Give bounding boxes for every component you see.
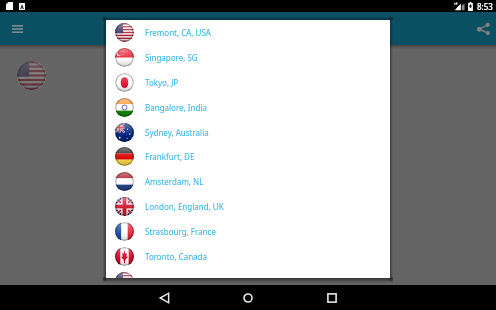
button[interactable]: Fremont, CA, USA: [106, 23, 390, 42]
button[interactable]: Tokyo, JP: [106, 73, 390, 92]
staticText: Fremont, CA, USA: [145, 27, 211, 38]
button[interactable]: Home: [235, 285, 260, 310]
button[interactable]: Strasbourg, France: [106, 222, 390, 241]
staticText: Sydney, Australia: [145, 127, 209, 138]
staticText: Tokyo, JP: [145, 77, 179, 88]
button[interactable]: Open navigation menu: [6, 18, 28, 40]
button[interactable]: Sydney, Australia: [106, 123, 390, 142]
button[interactable]: Amsterdam, NL: [106, 172, 390, 191]
staticText: Toronto, Canada: [145, 251, 207, 262]
staticText: London, England, UK: [145, 201, 224, 212]
button[interactable]: Recent apps: [319, 285, 344, 310]
button[interactable]: Toronto, Canada: [106, 247, 390, 266]
staticText: Frankfurt, DE: [145, 151, 195, 162]
staticText: Strasbourg, France: [145, 226, 216, 237]
staticText: 8:53: [477, 1, 493, 12]
button[interactable]: Share: [471, 17, 495, 41]
staticText: Singapore, SG: [145, 52, 198, 63]
staticText: Bangalore, India: [145, 102, 207, 113]
button[interactable]: Singapore, SG: [106, 48, 390, 67]
button[interactable]: London, England, UK: [106, 197, 390, 216]
button[interactable]: Fremont, CA, USA: [106, 272, 390, 278]
button[interactable]: Bangalore, India: [106, 98, 390, 117]
button[interactable]: Frankfurt, DE: [106, 147, 390, 166]
staticText: Amsterdam, NL: [145, 176, 204, 187]
button[interactable]: Back: [152, 285, 177, 310]
